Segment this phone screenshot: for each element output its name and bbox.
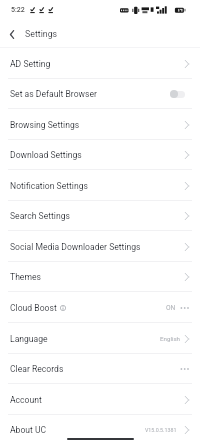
button[interactable]: AD Setting	[0, 48, 200, 79]
staticText: Account	[10, 395, 42, 405]
staticText: Set as Default Browser	[10, 89, 97, 99]
staticText: ON	[166, 304, 176, 312]
button[interactable]: Search Settings	[0, 201, 200, 231]
staticText: Search Settings	[10, 211, 70, 221]
button[interactable]: Notification Settings	[0, 170, 200, 201]
button[interactable]: Set as Default Browser toggle	[170, 90, 185, 98]
button[interactable]: Cloud Boost	[0, 292, 200, 323]
staticText: V15.0.5.1381	[145, 427, 177, 433]
button[interactable]: Browsing Settings	[0, 109, 200, 140]
staticText: 5:22	[11, 6, 25, 14]
staticText: Social Media Downloader Settings	[10, 242, 141, 252]
staticText: Themes	[10, 272, 41, 282]
staticText: English	[160, 335, 181, 342]
button[interactable]: Download Settings	[0, 140, 200, 170]
button[interactable]: Set as Default Browser	[0, 79, 200, 109]
staticText: Cloud Boost	[10, 303, 57, 313]
staticText: Notification Settings	[10, 181, 88, 191]
staticText: AD Setting	[10, 59, 51, 69]
staticText: Language	[10, 334, 48, 344]
staticText: Browsing Settings	[10, 120, 80, 130]
staticText: Clear Records	[10, 364, 64, 374]
button[interactable]: Language	[0, 323, 200, 354]
staticText: Settings	[25, 29, 58, 39]
button[interactable]: Back	[4, 21, 20, 47]
staticText: About UC	[10, 425, 47, 435]
button[interactable]: Themes	[0, 262, 200, 292]
button[interactable]: Clear Records	[0, 354, 200, 384]
button[interactable]: Social Media Downloader Settings	[0, 231, 200, 262]
staticText: Download Settings	[10, 150, 82, 160]
button[interactable]: About UC	[0, 415, 200, 445]
button[interactable]: Account	[0, 384, 200, 415]
